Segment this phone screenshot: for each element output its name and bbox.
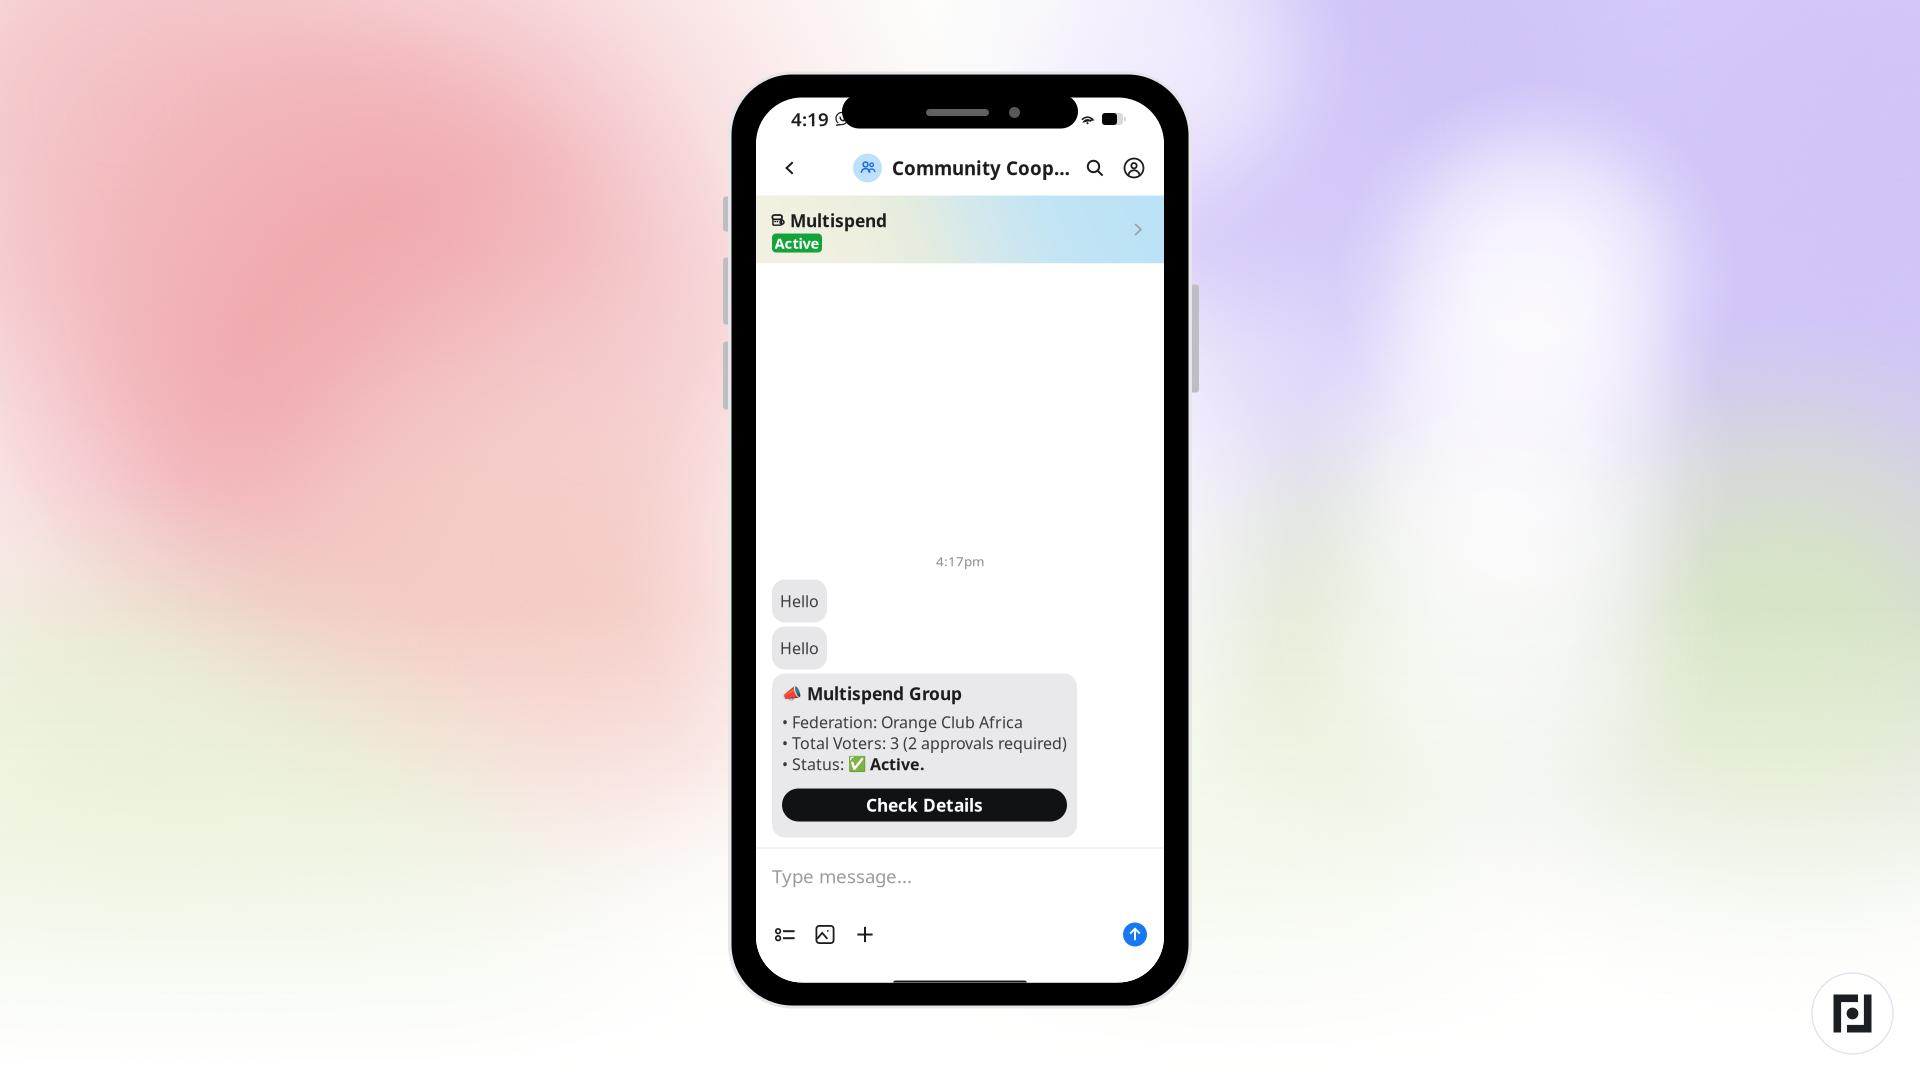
button[interactable]: Photos bbox=[811, 920, 839, 948]
staticText: Active. bbox=[866, 753, 924, 775]
button[interactable]: Options bbox=[771, 920, 799, 948]
staticText: Hello bbox=[780, 590, 819, 612]
staticText: • Status: bbox=[782, 753, 848, 775]
button[interactable]: Send bbox=[1123, 922, 1147, 946]
staticText: 4:19 bbox=[791, 107, 829, 131]
staticText: Community Coop… bbox=[892, 156, 1070, 180]
button[interactable]: Multispend bbox=[756, 195, 1164, 263]
staticText: Hello bbox=[780, 637, 819, 659]
button[interactable]: More bbox=[851, 920, 879, 948]
staticText: Multispend Group bbox=[807, 682, 962, 705]
staticText: Active bbox=[774, 233, 819, 253]
staticText: Multispend bbox=[790, 209, 887, 232]
staticText: Type message... bbox=[772, 864, 912, 888]
staticText: • Total Voters: 3 (2 approvals required) bbox=[782, 732, 1067, 754]
staticText: • Federation: Orange Club Africa bbox=[782, 711, 1023, 733]
button[interactable]: Search bbox=[1081, 154, 1109, 182]
staticText: Check Details bbox=[866, 793, 983, 816]
button[interactable]: Check Details bbox=[782, 788, 1067, 821]
button[interactable]: Back bbox=[774, 148, 806, 188]
staticText: 📣 bbox=[782, 684, 802, 703]
staticText: 4:17pm bbox=[936, 552, 984, 570]
staticText: ✅ bbox=[848, 756, 866, 772]
button[interactable]: Profile bbox=[1120, 154, 1148, 182]
